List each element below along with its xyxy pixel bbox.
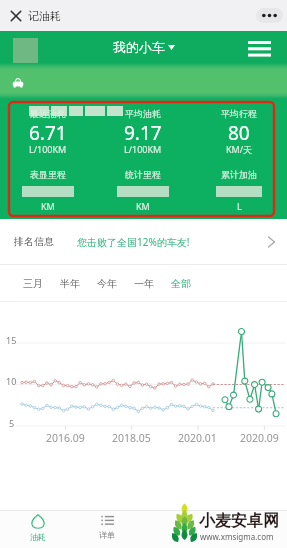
staticText: 表显里程: [30, 169, 66, 180]
button[interactable]: More options: [256, 8, 283, 23]
staticText: 最近油耗: [30, 108, 66, 119]
staticText: KM: [136, 200, 150, 212]
button[interactable]: Menu: [248, 40, 271, 58]
button[interactable]: 三月: [18, 265, 47, 301]
staticText: KM: [41, 200, 55, 212]
button[interactable]: 详单: [83, 511, 131, 548]
staticText: 全部: [171, 277, 191, 290]
button[interactable]: 一年: [129, 265, 158, 301]
staticText: 5: [9, 417, 15, 429]
staticText: 油耗: [30, 532, 46, 542]
staticText: 2016.09: [46, 431, 85, 445]
staticText: 详单: [99, 530, 115, 540]
staticText: L/100KM: [124, 143, 162, 155]
staticText: 累计加油: [221, 169, 257, 180]
staticText: 今年: [97, 277, 117, 290]
button[interactable]: 油耗: [14, 511, 62, 548]
button[interactable]: 我的小车: [113, 38, 175, 56]
button[interactable]: Close: [9, 9, 23, 23]
staticText: 三月: [23, 277, 43, 290]
staticText: 记油耗: [28, 9, 61, 23]
button[interactable]: 半年: [55, 265, 84, 301]
staticText: 小麦安卓网: [199, 511, 279, 531]
staticText: www.xmsigma.com: [200, 531, 274, 542]
staticText: 您击败了全国12%的车友!: [77, 235, 190, 249]
staticText: 平均油耗: [125, 108, 161, 119]
staticText: 半年: [60, 277, 80, 290]
staticText: 平均行程: [221, 108, 257, 119]
staticText: 2018.05: [112, 431, 151, 445]
staticText: 统计里程: [125, 169, 161, 180]
staticText: 80: [228, 120, 250, 146]
staticText: 2020.09: [240, 431, 279, 445]
staticText: 2020.01: [178, 431, 217, 445]
button[interactable]: 排名信息: [0, 219, 287, 264]
staticText: KM/天: [226, 143, 253, 155]
staticText: L/100KM: [29, 143, 67, 155]
staticText: 排名信息: [14, 235, 54, 248]
staticText: 15: [6, 334, 17, 346]
staticText: 9.17: [124, 120, 162, 146]
staticText: L: [237, 200, 242, 212]
button[interactable]: 今年: [92, 265, 121, 301]
staticText: 6.71: [29, 120, 67, 146]
staticText: 一年: [134, 277, 154, 290]
staticText: 10: [6, 375, 17, 387]
staticText: 我的小车: [113, 39, 165, 55]
button[interactable]: 全部: [166, 265, 195, 301]
